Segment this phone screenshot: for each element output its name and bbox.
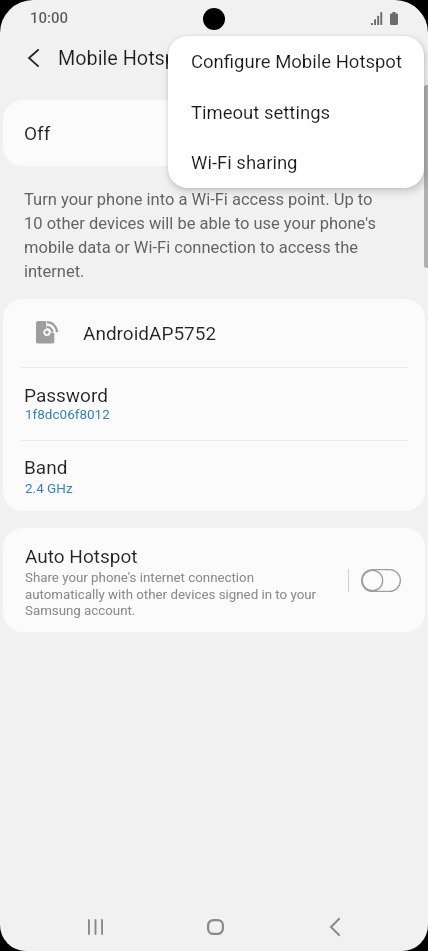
staticText: 2.4 GHz [25, 480, 73, 496]
staticText: AndroidAP5752 [83, 322, 217, 344]
staticText: Password [24, 384, 108, 406]
staticText: Configure Mobile Hotspot [191, 51, 402, 73]
button[interactable]: Recent apps [67, 899, 123, 951]
button[interactable]: Home [187, 899, 243, 951]
staticText: Turn your phone into a Wi-Fi access poin… [24, 190, 386, 281]
staticText: 1f8dc06f8012 [25, 406, 110, 422]
button[interactable] [3, 299, 425, 367]
button[interactable]: Wi-Fi sharing [168, 137, 424, 188]
staticText: Off [24, 122, 51, 144]
button[interactable]: Navigate up [11, 36, 55, 80]
staticText: Timeout settings [191, 102, 331, 124]
button[interactable]: Timeout settings [168, 86, 424, 137]
button[interactable] [3, 100, 425, 166]
button[interactable] [3, 440, 425, 511]
button[interactable] [3, 368, 425, 440]
staticText: Share your phone's internet connection a… [25, 570, 325, 618]
button[interactable]: Back [307, 899, 363, 951]
button[interactable]: Auto Hotspot toggle [354, 562, 407, 598]
staticText: Mobile Hotspot [58, 47, 194, 70]
staticText: Band [24, 456, 68, 478]
staticText: Wi-Fi sharing [191, 152, 298, 174]
staticText: 10:00 [30, 9, 69, 27]
staticText: Auto Hotspot [25, 545, 138, 567]
button[interactable] [3, 528, 339, 632]
button[interactable]: Configure Mobile Hotspot [168, 36, 424, 86]
